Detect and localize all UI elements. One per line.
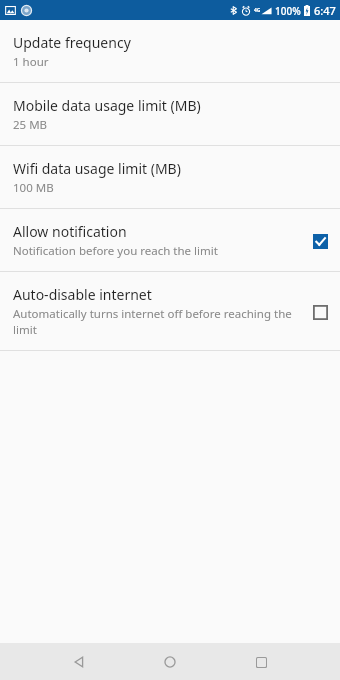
staticText: Allow notification bbox=[13, 222, 127, 241]
staticText: Auto-disable internet bbox=[13, 285, 152, 304]
staticText: 100 MB bbox=[13, 180, 54, 196]
staticText: 4G bbox=[254, 7, 261, 14]
staticText: Automatically turns internet off before … bbox=[13, 306, 301, 338]
staticText: 100% bbox=[275, 4, 301, 18]
staticText: 25 MB bbox=[13, 117, 48, 133]
staticText: Wifi data usage limit (MB) bbox=[13, 159, 181, 178]
button[interactable]: Wifi data usage limit (MB) bbox=[0, 146, 340, 208]
staticText: Mobile data usage limit (MB) bbox=[13, 96, 201, 115]
button[interactable]: Update frequency bbox=[0, 20, 340, 82]
button[interactable]: Home bbox=[153, 645, 187, 679]
staticText: Update frequency bbox=[13, 33, 131, 52]
button[interactable]: Mobile data usage limit (MB) bbox=[0, 83, 340, 145]
staticText: Notification before you reach the limit bbox=[13, 243, 218, 259]
button[interactable]: Allow notification bbox=[0, 209, 340, 271]
button[interactable]: Back bbox=[62, 645, 96, 679]
staticText: 1 hour bbox=[13, 54, 49, 70]
button[interactable]: Auto-disable internet bbox=[0, 272, 340, 350]
button[interactable]: Recent apps bbox=[244, 645, 278, 679]
button[interactable]: Unchecked checkbox bbox=[311, 303, 329, 321]
staticText: 6:47 bbox=[314, 3, 336, 18]
button[interactable]: Checked checkbox bbox=[311, 232, 329, 250]
